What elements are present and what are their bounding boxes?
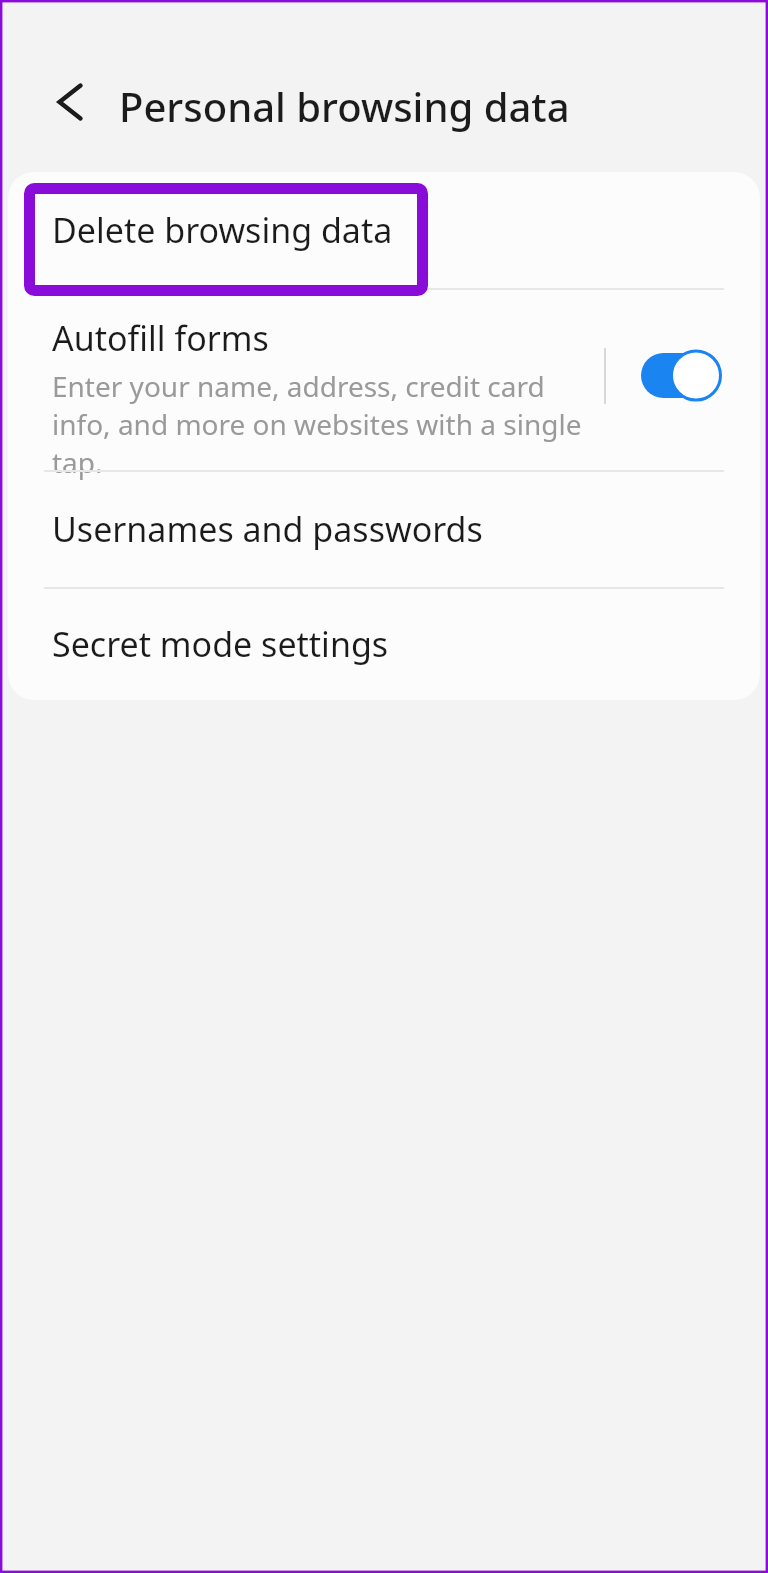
staticText: Enter your name, address, credit card in… bbox=[52, 367, 592, 481]
staticText: Autofill forms bbox=[52, 315, 269, 361]
button[interactable]: Autofill forms toggle, on bbox=[629, 340, 725, 412]
button[interactable]: Autofill forms bbox=[8, 288, 760, 470]
staticText: Delete browsing data bbox=[52, 207, 393, 253]
button[interactable]: Usernames and passwords bbox=[8, 470, 760, 587]
staticText: Secret mode settings bbox=[52, 621, 389, 667]
staticText: Personal browsing data bbox=[119, 79, 570, 133]
button[interactable]: Secret mode settings bbox=[8, 587, 760, 700]
button[interactable]: Back bbox=[34, 66, 106, 138]
button[interactable]: Delete browsing data bbox=[8, 172, 760, 288]
staticText: Usernames and passwords bbox=[52, 506, 483, 552]
